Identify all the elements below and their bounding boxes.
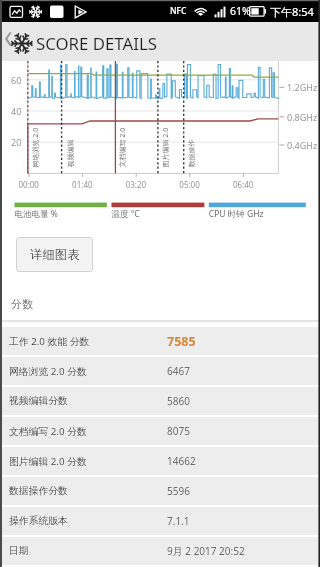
button[interactable]: 文档编写 2.0 分数 [0,417,320,445]
staticText: 9月 2 2017 20:52 [167,544,245,558]
staticText: 14662 [167,454,196,468]
staticText: 7585 [167,333,196,350]
button[interactable]: 操作系统版本 [0,507,320,535]
button[interactable]: 图片编辑 2.0 分数 [0,447,320,475]
button[interactable]: 数据操作分数 [0,477,320,505]
staticText: 工作 2.0 效能 分数 [9,335,90,348]
staticText: 数据操作分数 [9,485,68,497]
staticText: 文档编写 2.0 分数 [9,425,87,438]
staticText: 日期 [9,545,29,557]
staticText: 5860 [167,394,190,408]
staticText: SCORE DETAILS [36,32,157,55]
button[interactable]: 工作 2.0 效能 分数 [0,327,320,355]
staticText: 详细图表 [30,247,80,263]
staticText: NFC [170,5,187,17]
staticText: 8075 [167,424,190,438]
staticText: 6467 [167,364,190,378]
staticText: 分数 [11,297,33,311]
staticText: 5596 [167,484,190,498]
button[interactable]: 视频编辑分数 [0,387,320,415]
staticText: 下午8:54 [270,4,314,19]
button[interactable]: Back [0,22,320,61]
staticText: 7.1.1 [167,514,190,528]
button[interactable]: 详细图表 [16,237,93,272]
button[interactable]: 网络浏览 2.0 分数 [0,357,320,385]
staticText: 61% [230,4,251,18]
button[interactable]: 日期 [0,537,320,565]
staticText: 图片编辑 2.0 分数 [9,455,87,468]
staticText: 操作系统版本 [9,515,68,527]
staticText: 网络浏览 2.0 分数 [9,365,87,378]
staticText: 视频编辑分数 [9,395,68,407]
